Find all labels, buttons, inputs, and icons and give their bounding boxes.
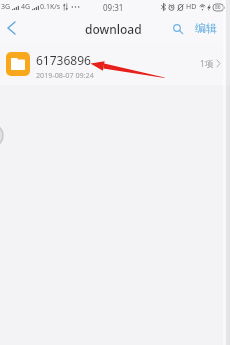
staticText: 0.1K/s [40,2,61,12]
staticText: 3G [1,2,11,12]
staticText: 09:31 [103,2,124,13]
staticText: 61736896 [36,52,91,68]
staticText: 4G [21,2,31,12]
button[interactable]: 61736896 [0,42,230,85]
staticText: 2019-08-07 09:24 [36,70,94,80]
staticText: download [85,21,142,37]
button[interactable]: Back [0,17,22,39]
staticText: 编辑 [195,21,217,35]
staticText: 86 [215,4,221,11]
staticText: HD [186,2,197,12]
staticText: 1项 [200,58,214,70]
button[interactable]: 编辑 [190,16,222,40]
button[interactable]: Search [167,18,188,39]
